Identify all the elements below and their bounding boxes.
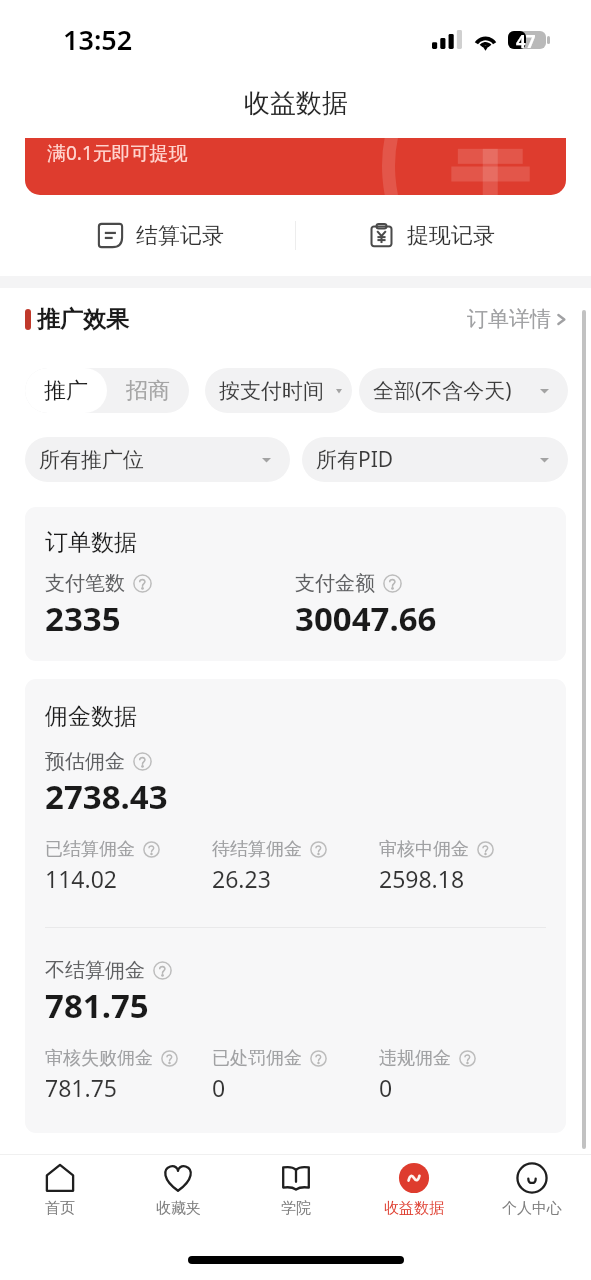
staticText: 提现记录 xyxy=(407,222,495,250)
staticText: 审核失败佣金 xyxy=(45,1047,153,1070)
staticText: 待结算佣金 xyxy=(212,838,302,861)
button[interactable]: 满0.1元即可提现 xyxy=(25,138,566,195)
button[interactable]: 订单详情 xyxy=(467,306,568,332)
staticText: 已处罚佣金 xyxy=(212,1047,302,1070)
button[interactable]: 所有PID xyxy=(302,437,568,482)
button[interactable]: Profile xyxy=(473,1154,591,1232)
staticText: 推广效果 xyxy=(37,305,129,334)
button[interactable]: 提现记录 xyxy=(296,195,566,276)
staticText: 所有推广位 xyxy=(39,447,144,473)
staticText: 个人中心 xyxy=(502,1199,562,1218)
button[interactable]: 结算记录 xyxy=(25,195,295,276)
staticText: 满0.1元即可提现 xyxy=(47,140,188,166)
staticText: 学院 xyxy=(281,1199,311,1218)
staticText: 13:52 xyxy=(63,21,133,58)
staticText: 违规佣金 xyxy=(379,1047,451,1070)
staticText: 收益数据 xyxy=(384,1199,444,1218)
staticText: 预估佣金 xyxy=(45,749,125,774)
staticText: 订单详情 xyxy=(467,306,551,332)
staticText: 不结算佣金 xyxy=(45,958,145,983)
staticText: 0 xyxy=(379,1072,393,1103)
staticText: 首页 xyxy=(45,1199,75,1218)
staticText: 2738.43 xyxy=(45,774,168,819)
staticText: 0 xyxy=(212,1072,226,1103)
staticText: 2335 xyxy=(45,596,121,641)
staticText: 30047.66 xyxy=(295,596,437,641)
staticText: 所有PID xyxy=(316,445,394,474)
button[interactable]: 所有推广位 xyxy=(25,437,290,482)
button[interactable]: 按支付时间 xyxy=(205,368,352,413)
staticText: 按支付时间 xyxy=(219,378,324,404)
button[interactable]: Academy xyxy=(237,1154,355,1232)
button[interactable]: 招商 xyxy=(107,368,189,413)
staticText: 收藏夹 xyxy=(156,1199,201,1218)
staticText: 结算记录 xyxy=(136,222,224,250)
staticText: 全部(不含今天) xyxy=(373,376,512,405)
staticText: 支付笔数 xyxy=(45,571,125,596)
staticText: 审核中佣金 xyxy=(379,838,469,861)
button[interactable]: 全部(不含今天) xyxy=(359,368,568,413)
staticText: 781.75 xyxy=(45,1072,117,1103)
staticText: 47 xyxy=(516,30,536,48)
staticText: 招商 xyxy=(126,377,170,405)
button[interactable]: Earnings xyxy=(355,1154,473,1232)
button[interactable]: Favorites xyxy=(119,1154,237,1232)
staticText: 支付金额 xyxy=(295,571,375,596)
staticText: 114.02 xyxy=(45,863,117,894)
staticText: 佣金数据 xyxy=(45,702,137,731)
staticText: 781.75 xyxy=(45,983,149,1028)
staticText: 推广 xyxy=(44,377,88,405)
staticText: 已结算佣金 xyxy=(45,838,135,861)
staticText: 2598.18 xyxy=(379,863,465,894)
staticText: 收益数据 xyxy=(244,87,348,120)
button[interactable]: 推广 xyxy=(25,368,107,413)
staticText: 订单数据 xyxy=(45,528,137,557)
button[interactable]: Home xyxy=(0,1154,119,1232)
staticText: 26.23 xyxy=(212,863,271,894)
